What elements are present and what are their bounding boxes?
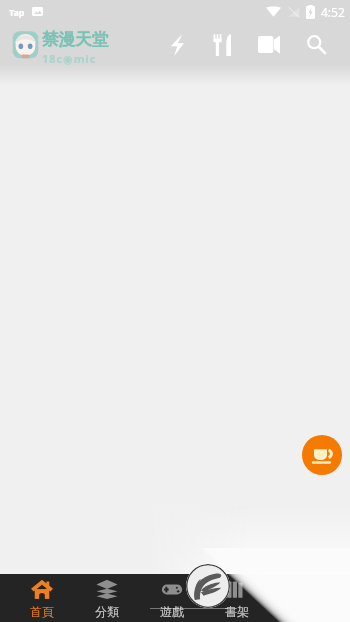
staticText: 首頁 [30, 604, 54, 619]
button[interactable]: App logo [11, 28, 40, 61]
button[interactable]: Video [245, 23, 293, 65]
button[interactable]: Search [293, 23, 341, 65]
button[interactable]: 書架 [204, 574, 269, 622]
button[interactable]: 遊戲 [139, 574, 204, 622]
button[interactable]: 分類 [74, 574, 139, 622]
staticText: 書架 [225, 604, 249, 619]
button[interactable]: Coffee [302, 435, 342, 475]
staticText: 分類 [95, 604, 119, 619]
staticText: 遊戲 [160, 604, 184, 619]
staticText: 18c◉mic [42, 51, 97, 66]
button[interactable]: Food [199, 23, 245, 65]
button[interactable]: 首頁 [9, 574, 74, 622]
button[interactable]: Floating assistant [186, 564, 230, 608]
button[interactable]: Flash [155, 23, 199, 65]
staticText: 4:52 [321, 4, 345, 20]
staticText: Tap [9, 6, 25, 18]
button[interactable]: 我的 [269, 574, 334, 622]
staticText: 禁漫天堂 [42, 29, 108, 50]
